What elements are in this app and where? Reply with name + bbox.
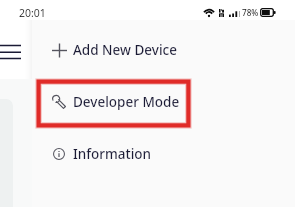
staticText: 20:01 bbox=[19, 6, 46, 20]
staticText: 78% bbox=[242, 7, 259, 18]
button[interactable]: Add New Device bbox=[32, 24, 295, 76]
staticText: Information bbox=[73, 145, 152, 163]
button[interactable]: Information bbox=[32, 128, 295, 180]
button[interactable]: Open navigation menu bbox=[0, 40, 21, 64]
button[interactable]: Developer Mode bbox=[32, 76, 295, 128]
staticText: Add New Device bbox=[73, 41, 177, 59]
staticText: Developer Mode bbox=[73, 93, 180, 111]
